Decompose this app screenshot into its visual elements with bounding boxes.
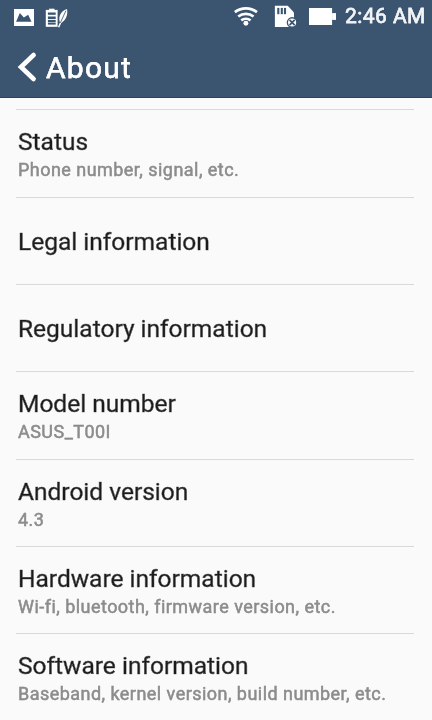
staticText: Baseband, kernel version, build number, … xyxy=(18,683,387,704)
button[interactable]: Android version xyxy=(0,460,432,547)
staticText: Regulatory information xyxy=(18,314,268,343)
button[interactable]: Navigate up xyxy=(0,41,432,93)
staticText: Wi-fi, bluetooth, firmware version, etc. xyxy=(18,596,336,617)
button[interactable]: Software information xyxy=(0,634,432,720)
staticText: ASUS_T00I xyxy=(18,421,111,442)
staticText: Hardware information xyxy=(18,564,257,593)
staticText: Legal information xyxy=(18,227,210,256)
staticText: Status xyxy=(18,127,89,156)
button[interactable]: Hardware information xyxy=(0,547,432,634)
staticText: Software information xyxy=(18,651,249,680)
staticText: Phone number, signal, etc. xyxy=(18,159,240,180)
staticText: Software information xyxy=(18,651,249,680)
button[interactable]: Status xyxy=(0,110,432,197)
staticText: Status xyxy=(18,127,89,156)
button[interactable]: Navigate up xyxy=(0,41,37,93)
staticText: 4.3 xyxy=(18,509,45,530)
staticText: 4.3 xyxy=(18,509,45,530)
staticText: Regulatory information xyxy=(18,314,268,343)
staticText: Model number xyxy=(18,389,176,418)
staticText: Phone number, signal, etc. xyxy=(18,159,240,180)
staticText: About xyxy=(46,50,133,85)
button[interactable]: Model number xyxy=(0,372,432,459)
staticText: Model number xyxy=(18,389,176,418)
staticText: 2:46 AM xyxy=(345,4,426,29)
staticText: Baseband, kernel version, build number, … xyxy=(18,683,387,704)
staticText: Wi-fi, bluetooth, firmware version, etc. xyxy=(18,596,336,617)
staticText: Hardware information xyxy=(18,564,257,593)
staticText: About xyxy=(46,50,133,85)
staticText: Android version xyxy=(18,477,189,506)
staticText: Android version xyxy=(18,477,189,506)
staticText: Legal information xyxy=(18,227,210,256)
staticText: 2:46 AM xyxy=(345,4,426,29)
button[interactable]: Regulatory information xyxy=(0,285,432,372)
staticText: ASUS_T00I xyxy=(18,421,111,442)
button[interactable]: Legal information xyxy=(0,198,432,285)
